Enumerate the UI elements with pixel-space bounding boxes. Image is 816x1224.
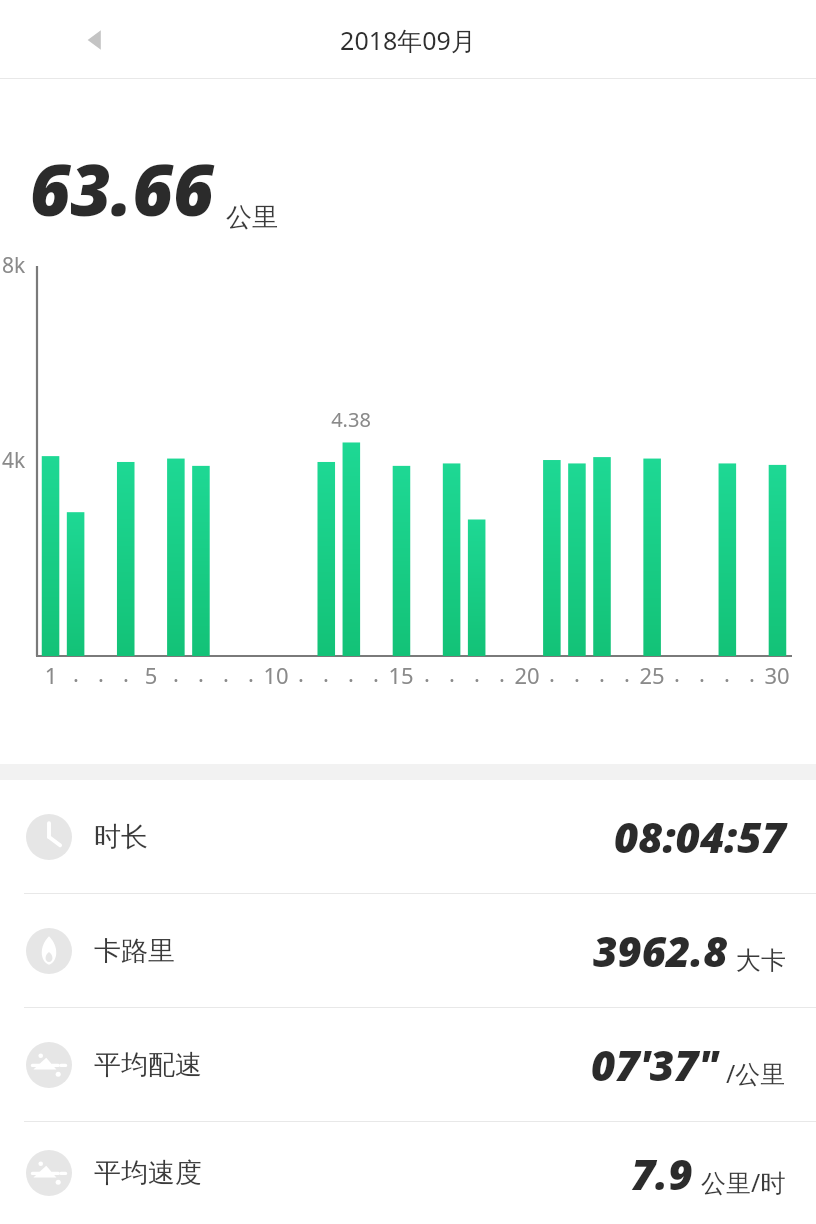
staticText: 15 [384,660,418,690]
button[interactable]: Back [68,12,124,68]
staticText: 平均速度 [94,1156,202,1190]
staticText: . [192,658,210,688]
staticText: . [543,658,561,688]
staticText: . [568,658,586,688]
button[interactable]: 时长 [0,780,816,893]
button[interactable]: 平均速度 [0,1122,816,1224]
staticText: . [342,658,360,688]
staticText: . [593,658,611,688]
staticText: 08:04:57 [614,808,786,865]
button[interactable]: 平均配速 [0,1008,816,1121]
staticText: 平均配速 [94,1048,202,1082]
staticText: . [167,658,185,688]
button[interactable]: 卡路里 [0,894,816,1007]
staticText: 时长 [94,820,148,854]
staticText: . [67,658,85,688]
staticText: 4.38 [324,406,378,433]
staticText: . [618,658,636,688]
staticText: . [718,658,736,688]
staticText: 大卡 [736,945,786,976]
staticText: . [468,658,486,688]
staticText: 63.66 [30,141,214,236]
staticText: 5 [134,660,168,690]
staticText: . [92,658,110,688]
staticText: . [292,658,310,688]
staticText: . [493,658,511,688]
staticText: 10 [259,660,293,690]
staticText: 公里/时 [701,1165,786,1199]
staticText: /公里 [726,1056,786,1090]
staticText: 卡路里 [94,934,175,968]
staticText: . [117,658,135,688]
staticText: . [443,658,461,688]
staticText: 1 [34,660,68,690]
staticText: 2018年09月 [340,23,476,57]
staticText: . [743,658,761,688]
staticText: . [217,658,235,688]
staticText: 7.9 [631,1145,693,1202]
staticText: . [317,658,335,688]
staticText: . [367,658,385,688]
staticText: . [418,658,436,688]
staticText: . [242,658,260,688]
staticText: . [693,658,711,688]
staticText: 07'37" [591,1036,718,1093]
staticText: 20 [510,660,544,690]
staticText: 4k [2,446,26,475]
staticText: 公里 [226,201,278,234]
staticText: 8k [2,251,26,280]
staticText: 30 [760,660,794,690]
staticText: 25 [635,660,669,690]
staticText: . [668,658,686,688]
staticText: 3962.8 [593,922,728,979]
